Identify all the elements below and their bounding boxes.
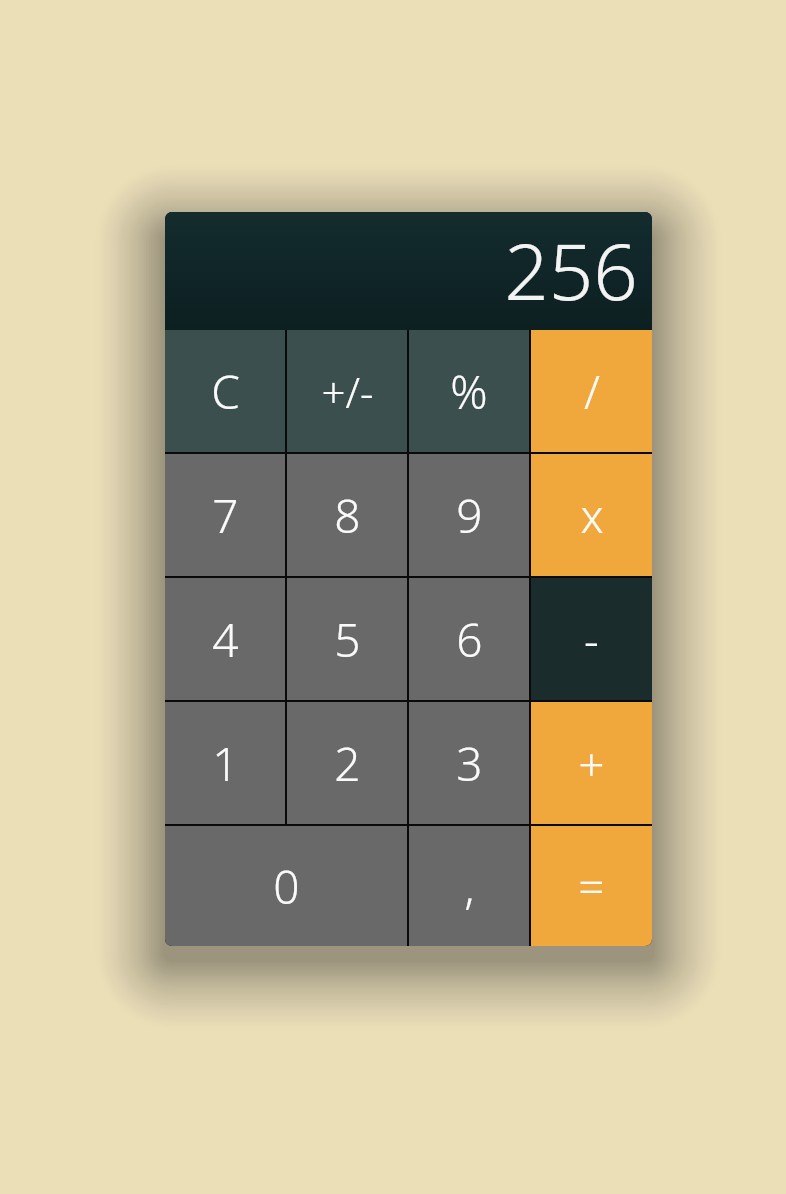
- staticText: +: [578, 732, 605, 795]
- button[interactable]: 3: [409, 702, 529, 824]
- staticText: 1: [212, 732, 239, 795]
- staticText: /: [584, 360, 600, 423]
- button[interactable]: +: [531, 702, 652, 824]
- button[interactable]: =: [531, 826, 652, 946]
- button[interactable]: 4: [165, 578, 285, 700]
- staticText: 6: [456, 608, 483, 671]
- button[interactable]: 6: [409, 578, 529, 700]
- button[interactable]: x: [531, 454, 652, 576]
- staticText: 3: [456, 732, 483, 795]
- staticText: 0: [273, 855, 300, 918]
- button[interactable]: 5: [287, 578, 407, 700]
- staticText: %: [450, 360, 488, 423]
- staticText: 4: [212, 608, 239, 671]
- button[interactable]: 0: [165, 826, 407, 946]
- button[interactable]: 9: [409, 454, 529, 576]
- staticText: 5: [334, 608, 361, 671]
- button[interactable]: 7: [165, 454, 285, 576]
- staticText: x: [580, 484, 604, 547]
- button[interactable]: /: [531, 330, 652, 452]
- button[interactable]: -: [531, 578, 652, 700]
- button[interactable]: 2: [287, 702, 407, 824]
- staticText: =: [578, 855, 605, 918]
- staticText: 8: [334, 484, 361, 547]
- staticText: ,: [464, 855, 475, 918]
- button[interactable]: 8: [287, 454, 407, 576]
- button[interactable]: 1: [165, 702, 285, 824]
- button[interactable]: %: [409, 330, 529, 452]
- button[interactable]: ,: [409, 826, 529, 946]
- staticText: -: [584, 608, 599, 671]
- staticText: 9: [456, 484, 483, 547]
- button[interactable]: C: [165, 330, 285, 452]
- button[interactable]: +/-: [287, 330, 407, 452]
- staticText: +/-: [321, 363, 374, 420]
- staticText: 7: [212, 484, 239, 547]
- staticText: C: [211, 360, 240, 423]
- staticText: 2: [334, 732, 361, 795]
- staticText: 256: [504, 217, 638, 323]
